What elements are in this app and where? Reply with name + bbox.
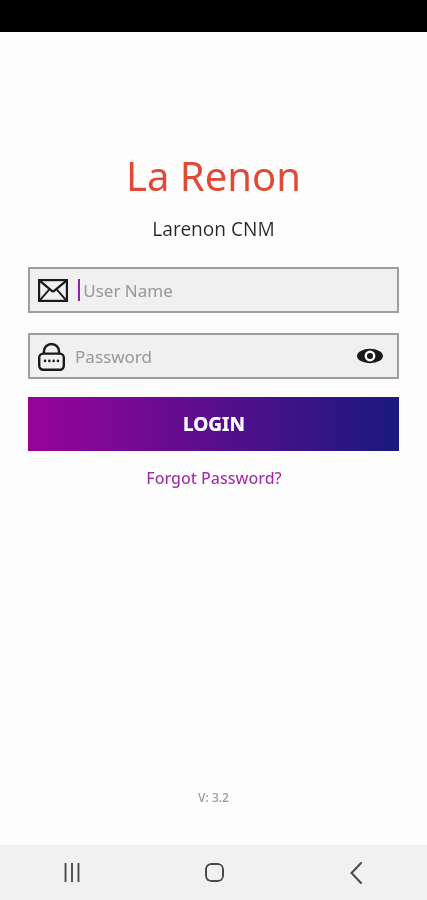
staticText: La Renon [126,148,301,202]
button[interactable]: Forgot Password? [136,463,292,493]
button[interactable]: LOGIN [28,397,399,451]
staticText: Forgot Password? [146,467,282,489]
button[interactable]: Home [143,845,285,900]
button[interactable]: Password field [28,333,399,379]
button[interactable]: User Name field [28,267,399,313]
button[interactable]: Recent apps [0,845,143,900]
button[interactable]: Show password [355,341,385,371]
staticText: User Name [83,279,173,302]
button[interactable]: Back [285,845,427,900]
staticText: V: 3.2 [198,789,229,805]
staticText: LOGIN [183,411,245,437]
staticText: Larenon CNM [152,216,275,242]
staticText: Password [75,345,152,368]
